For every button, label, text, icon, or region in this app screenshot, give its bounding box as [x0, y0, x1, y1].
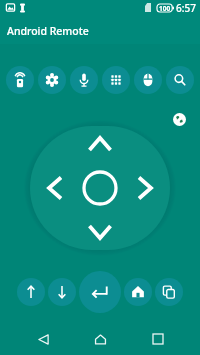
staticText: Android Remote [7, 24, 89, 38]
button[interactable]: Search [166, 66, 194, 94]
staticText: 100 [159, 4, 171, 12]
button[interactable]: Recent apps [155, 278, 183, 306]
button[interactable]: Direction pad [30, 126, 170, 250]
button[interactable]: Page down [48, 278, 76, 306]
button[interactable]: Page up [17, 278, 45, 306]
button[interactable]: Remote [6, 66, 34, 94]
button[interactable]: Voice input [70, 66, 98, 94]
button[interactable]: Back [79, 271, 121, 313]
button[interactable]: Home [124, 278, 152, 306]
button[interactable]: Apps [102, 66, 130, 94]
button[interactable]: Back [28, 324, 58, 354]
button[interactable]: Switch remote [173, 113, 186, 126]
button[interactable]: Mouse [134, 66, 162, 94]
staticText: 6:57 [176, 1, 196, 15]
button[interactable]: Settings [38, 66, 66, 94]
button[interactable]: Home [85, 324, 115, 354]
button[interactable]: Recent apps [143, 324, 173, 354]
